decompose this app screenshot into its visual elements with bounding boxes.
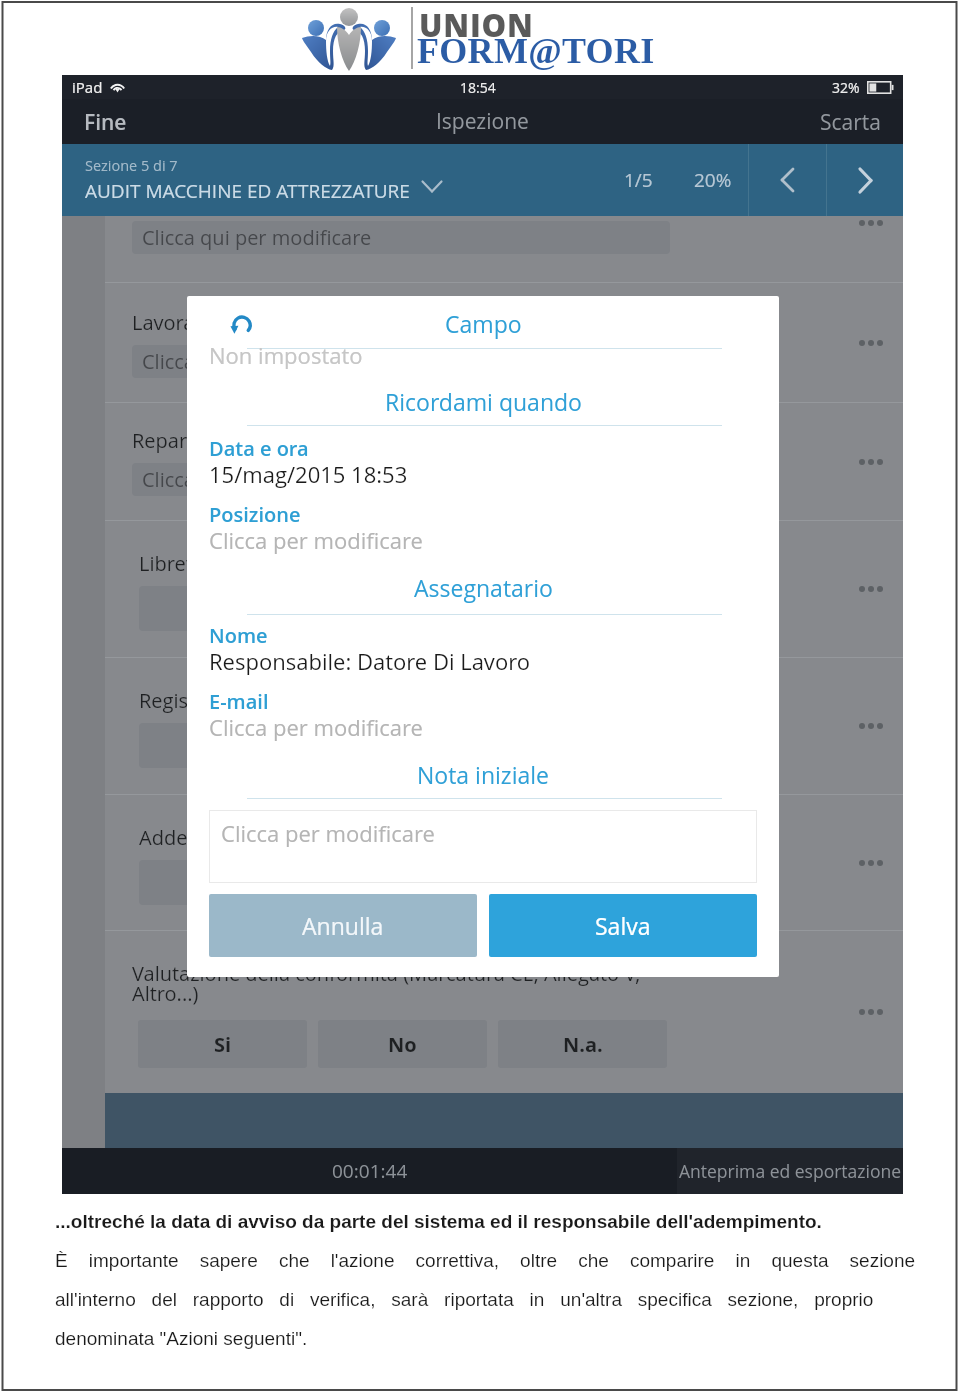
button[interactable]: Valutazione della conformità (Marcatura … [105, 931, 903, 1093]
staticText: Clicca per modificare [221, 818, 435, 848]
staticText: Sezione 5 di 7 [85, 156, 178, 176]
button[interactable]: Reparto / Area [105, 403, 903, 520]
button[interactable]: N.a. [498, 1020, 667, 1068]
button[interactable]: More options [850, 851, 892, 875]
staticText: No [388, 1031, 417, 1058]
staticText: Addestramento del personale [139, 824, 416, 851]
staticText: Responsabile: Datore Di Lavoro [209, 646, 530, 676]
staticText: È importante sapere che l'azione corrett… [55, 1250, 916, 1271]
button[interactable]: No [318, 1020, 487, 1068]
button[interactable]: Lavorazione eseguita [105, 283, 903, 402]
button[interactable]: Fine [62, 99, 149, 144]
button[interactable]: Salva [489, 894, 757, 957]
staticText: Libretto di uso e manutenzione [139, 550, 430, 577]
staticText: Clicca per modificare [142, 348, 337, 375]
button[interactable]: Registro dei controlli [105, 658, 903, 794]
staticText: 00:01:44 [332, 1158, 408, 1184]
staticText: Lavorazione eseguita [132, 309, 329, 336]
staticText: iPad [72, 77, 103, 97]
staticText: Clicca per modificare [209, 712, 423, 742]
staticText: Reparto / Area [132, 427, 267, 454]
staticText: all'interno del rapporto di verifica, sa… [55, 1289, 874, 1310]
button[interactable]: Addestramento del personale [105, 795, 903, 930]
staticText: Ispezione [436, 107, 529, 136]
button[interactable]: More options [850, 577, 892, 601]
staticText: Clicca qui per modificare [142, 224, 372, 251]
button[interactable]: Next section [827, 144, 903, 216]
staticText: Assegnatario [414, 572, 553, 603]
button[interactable]: Undo [230, 312, 254, 336]
button[interactable]: More options [850, 714, 892, 738]
staticText: Clicca per modificare [142, 466, 337, 493]
button[interactable]: 00:01:44 [62, 1148, 677, 1194]
staticText: UNION [419, 4, 534, 46]
staticText: denominata "Azioni seguenti". [55, 1328, 308, 1349]
button[interactable]: More options [850, 211, 892, 235]
staticText: Non impostato [209, 340, 363, 370]
button[interactable]: More options [850, 1000, 892, 1024]
staticText: 1/5 [624, 167, 653, 193]
staticText: N.a. [563, 1031, 603, 1058]
staticText: Registro dei controlli [139, 687, 330, 714]
staticText: Posizione [209, 501, 301, 528]
staticText: Clicca per modificare [209, 525, 423, 555]
staticText: Nome [209, 622, 268, 649]
staticText: Si [214, 1031, 232, 1058]
staticText: Valutazione della conformità (Marcatura … [132, 960, 641, 987]
button[interactable]: Clicca per modificare [209, 810, 757, 883]
staticText: Annulla [302, 910, 384, 941]
staticText: Fine [84, 108, 127, 135]
staticText: E-mail [209, 688, 269, 715]
staticText: Altro...) [132, 980, 199, 1007]
staticText: FORM@TORI [417, 31, 655, 71]
button[interactable]: More options [850, 331, 892, 355]
button[interactable]: Clicca qui per modificare [105, 216, 903, 282]
staticText: Scarta [820, 108, 881, 135]
button[interactable]: Anteprima ed esportazione [677, 1148, 903, 1194]
staticText: Data e ora [209, 435, 309, 462]
staticText: AUDIT MACCHINE ED ATTREZZATURE [85, 178, 410, 204]
staticText: Campo [445, 308, 522, 339]
staticText: 15/mag/2015 18:53 [209, 459, 408, 489]
staticText: Salva [595, 910, 651, 941]
button[interactable]: Si [138, 1020, 307, 1068]
staticText: Anteprima ed esportazione [679, 1159, 902, 1183]
button[interactable]: Libretto di uso e manutenzione [105, 521, 903, 657]
button[interactable]: Annulla [209, 894, 477, 957]
staticText: Nota iniziale [417, 759, 549, 790]
staticText: 20% [694, 167, 732, 193]
button[interactable]: Previous section [749, 144, 826, 216]
staticText: 32% [832, 78, 860, 97]
button[interactable]: More options [850, 450, 892, 474]
staticText: 18:54 [460, 78, 496, 97]
staticText: ...oltreché la data di avviso da parte d… [55, 1211, 822, 1232]
button[interactable]: Scarta [798, 99, 903, 144]
staticText: Ricordami quando [385, 386, 582, 417]
